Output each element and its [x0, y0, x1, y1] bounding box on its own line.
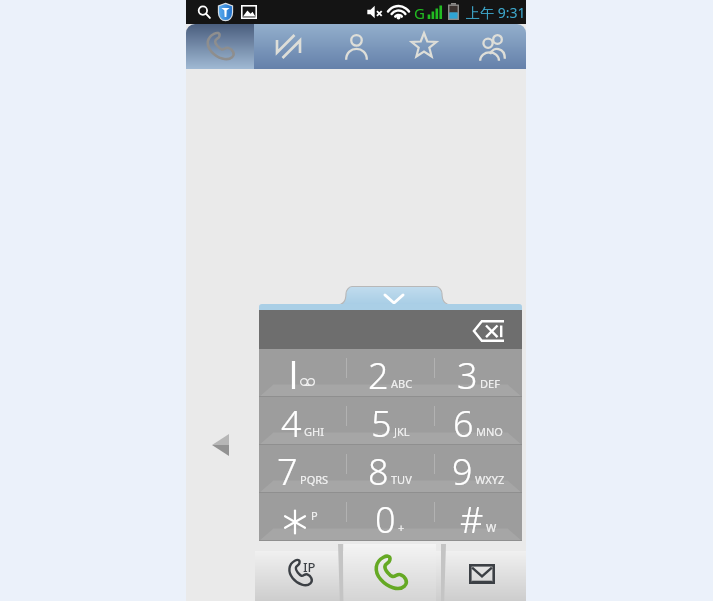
button[interactable]: Call — [344, 544, 436, 601]
button[interactable] — [259, 349, 346, 397]
staticText: PQRS — [300, 472, 329, 487]
button[interactable]: Favourites — [390, 24, 458, 69]
staticText: 3 — [457, 351, 478, 399]
staticText: GHI — [304, 424, 324, 439]
staticText: 8 — [368, 447, 389, 495]
staticText: 2 — [368, 351, 389, 399]
button[interactable]: 5 — [346, 397, 434, 445]
button[interactable]: 3 — [434, 349, 522, 397]
button[interactable]: 9 — [434, 445, 522, 493]
button[interactable]: Contacts — [322, 24, 390, 69]
staticText: 7 — [277, 447, 298, 495]
staticText: # — [460, 495, 484, 543]
staticText: IP — [303, 558, 316, 576]
button[interactable]: 8 — [346, 445, 434, 493]
staticText: W — [486, 520, 497, 535]
staticText: 上午 9:31 — [466, 3, 526, 22]
staticText: WXYZ — [475, 472, 505, 487]
button[interactable]: Backspace — [469, 318, 508, 343]
button[interactable]: Back — [212, 434, 229, 456]
staticText: + — [398, 520, 405, 535]
staticText: ABC — [391, 376, 413, 391]
button[interactable]: 6 — [434, 397, 522, 445]
staticText: P — [311, 508, 318, 523]
button[interactable]: Keypad — [186, 24, 254, 69]
staticText: 9 — [452, 447, 473, 495]
staticText: DEF — [480, 376, 500, 391]
staticText: G — [414, 3, 425, 23]
button[interactable]: Hide keypad — [337, 285, 451, 305]
button[interactable]: Groups — [458, 24, 526, 69]
button[interactable]: 2 — [346, 349, 434, 397]
button[interactable]: IP call — [260, 551, 330, 601]
button[interactable]: P — [259, 493, 346, 541]
staticText: 4 — [281, 399, 302, 447]
staticText: MNO — [476, 424, 503, 439]
staticText: JKL — [394, 424, 410, 439]
button[interactable]: # — [434, 493, 522, 541]
button[interactable]: Call log — [254, 24, 322, 69]
button[interactable]: 7 — [259, 445, 346, 493]
staticText: 6 — [453, 399, 474, 447]
button[interactable]: Message — [446, 551, 516, 601]
staticText: 0 — [375, 495, 396, 543]
staticText: 5 — [371, 399, 392, 447]
button[interactable]: 0 — [346, 493, 434, 541]
button[interactable]: 4 — [259, 397, 346, 445]
staticText: TUV — [391, 472, 412, 487]
